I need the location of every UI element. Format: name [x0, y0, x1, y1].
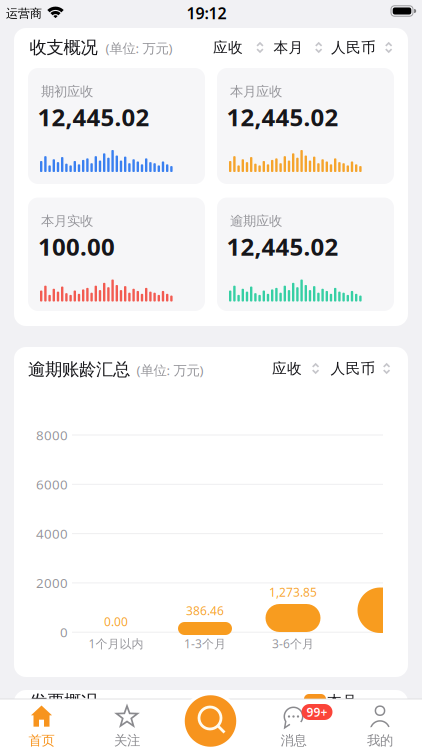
staticText: (单位: 万元) — [136, 361, 203, 379]
staticText: 12,445.02 — [226, 101, 338, 133]
button[interactable]: 首页 — [9, 703, 73, 750]
staticText: 1,273.85 — [269, 584, 317, 600]
staticText: 本月应收 — [230, 83, 282, 100]
button[interactable]: 人民币 — [328, 357, 393, 379]
staticText: 收支概况 — [29, 37, 97, 58]
staticText: 8000 — [36, 426, 68, 444]
staticText: 运营商 — [6, 6, 42, 21]
button[interactable]: 人民币 — [328, 36, 395, 58]
staticText: 应收 — [213, 38, 243, 56]
staticText: 首页 — [28, 732, 54, 749]
staticText: 386.46 — [186, 602, 224, 618]
staticText: 6000 — [36, 475, 68, 493]
button[interactable]: 应收 — [210, 36, 266, 58]
button[interactable]: 应收 — [269, 357, 322, 379]
staticText: 本月实收 — [41, 213, 93, 229]
button[interactable]: 本月 — [271, 36, 325, 58]
staticText: 2000 — [36, 574, 68, 592]
staticText: 0.00 — [104, 613, 128, 629]
button[interactable]: 搜索 — [181, 692, 239, 750]
staticText: 19:12 — [186, 2, 226, 24]
staticText: 人民币 — [331, 38, 376, 56]
button[interactable]: 我的 — [348, 703, 412, 750]
staticText: 12,445.02 — [37, 101, 149, 133]
staticText: 12,445.02 — [226, 231, 338, 262]
staticText: 本月 — [273, 38, 303, 56]
button[interactable]: 关注 — [95, 703, 159, 750]
staticText: 应收 — [272, 359, 302, 377]
staticText: 关注 — [114, 732, 140, 749]
staticText: 1-3个月 — [184, 635, 226, 651]
staticText: 4000 — [36, 525, 68, 542]
staticText: 人民币 — [330, 359, 375, 377]
staticText: 消息 — [280, 732, 306, 749]
staticText: 1个月以内 — [88, 635, 143, 651]
staticText: 期初应收 — [41, 83, 93, 100]
staticText: 逾期应收 — [230, 213, 282, 229]
staticText: 0 — [60, 623, 68, 641]
staticText: 本月 — [327, 692, 357, 710]
staticText: 我的 — [367, 732, 393, 749]
staticText: 3-6个月 — [272, 635, 314, 651]
staticText: 100.00 — [38, 231, 115, 262]
staticText: (单位: 万元) — [105, 39, 172, 57]
staticText: 发票概况 — [30, 691, 98, 712]
button[interactable]: 消息 — [261, 703, 325, 750]
staticText: 逾期账龄汇总 — [28, 359, 130, 380]
staticText: 99+ — [306, 704, 327, 720]
